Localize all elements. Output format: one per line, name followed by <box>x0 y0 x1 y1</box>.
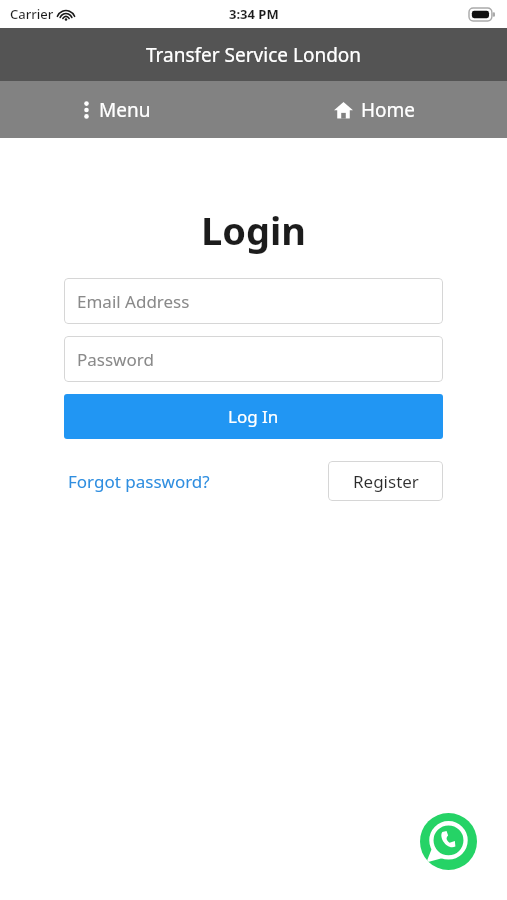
button[interactable]: Log In <box>64 394 443 439</box>
staticText: Menu <box>99 97 151 123</box>
staticText: Login <box>0 204 507 256</box>
staticText: Forgot password? <box>68 470 210 493</box>
staticText: Register <box>353 470 419 493</box>
staticText: Transfer Service London <box>146 42 362 68</box>
staticText: Password <box>77 348 154 371</box>
button[interactable]: Menu <box>80 91 155 129</box>
button[interactable]: Password <box>64 336 443 382</box>
staticText: Log In <box>228 405 279 428</box>
staticText: Home <box>361 97 416 123</box>
button[interactable]: Email Address <box>64 278 443 324</box>
staticText: Email Address <box>77 290 190 313</box>
staticText: Carrier <box>10 5 54 23</box>
staticText: 3:34 PM <box>229 5 279 23</box>
button[interactable]: Home <box>330 91 420 129</box>
button[interactable]: Forgot password? <box>64 464 214 499</box>
button[interactable]: Chat on WhatsApp <box>420 813 477 870</box>
button[interactable]: Register <box>328 461 443 501</box>
